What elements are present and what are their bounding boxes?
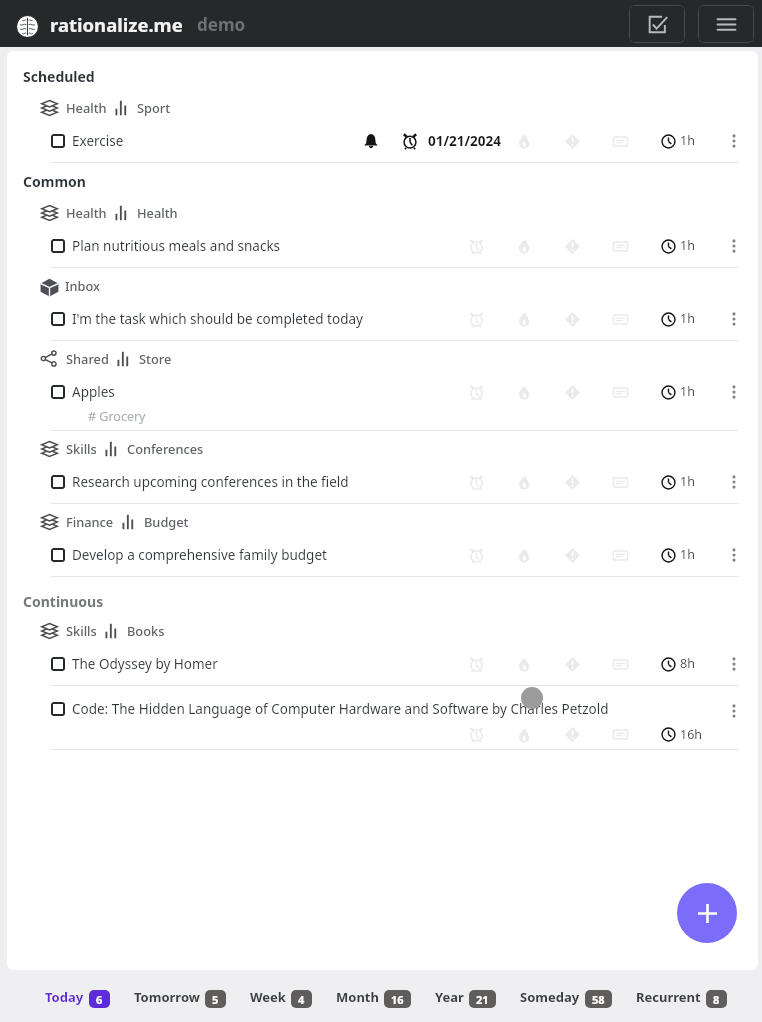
button[interactable]: Finance — [41, 504, 758, 538]
button[interactable]: Complete Research upcoming conferences i… — [7, 465, 758, 498]
staticText: Budget — [144, 513, 189, 530]
staticText: Conferences — [127, 440, 204, 457]
staticText: 5 — [212, 992, 219, 1007]
staticText: Health — [137, 204, 178, 221]
button[interactable]: Year — [435, 982, 496, 1012]
staticText: Health — [66, 99, 107, 116]
button[interactable]: Complete Code: The Hidden Language of Co… — [7, 686, 758, 744]
staticText: 1h — [680, 310, 695, 327]
button[interactable]: Complete Apples — [51, 385, 65, 399]
button[interactable]: More options — [725, 702, 743, 720]
button[interactable]: Toggle completed tasks — [629, 5, 685, 43]
staticText: Common — [23, 172, 86, 191]
staticText: 1h — [680, 132, 695, 149]
staticText: Today — [45, 988, 84, 1006]
staticText: Month — [336, 988, 379, 1006]
staticText: 01/21/2024 — [428, 132, 501, 150]
staticText: Finance — [66, 513, 114, 530]
button[interactable]: Complete I'm the task which should be co… — [51, 312, 65, 326]
button[interactable]: Inbox — [41, 268, 758, 302]
button[interactable]: More options — [725, 473, 743, 491]
staticText: Scheduled — [23, 67, 95, 86]
button[interactable]: Menu — [698, 5, 754, 43]
button[interactable]: Complete I'm the task which should be co… — [7, 302, 758, 335]
button[interactable]: More options — [725, 655, 743, 673]
button[interactable]: Someday — [520, 982, 612, 1012]
button[interactable]: More options — [725, 310, 743, 328]
button[interactable]: Skills — [41, 431, 758, 465]
staticText: Apples — [72, 383, 115, 401]
staticText: Research upcoming conferences in the fie… — [72, 473, 349, 491]
staticText: demo — [197, 13, 246, 36]
button[interactable]: Today — [45, 982, 110, 1012]
staticText: 1h — [680, 383, 695, 400]
button[interactable]: Shared — [41, 341, 758, 375]
staticText: Week — [250, 988, 286, 1006]
staticText: Year — [435, 988, 464, 1006]
button[interactable]: Complete Code: The Hidden Language of Co… — [51, 702, 65, 716]
staticText: 6 — [96, 992, 103, 1007]
button[interactable]: Complete Plan nutritious meals and snack… — [7, 229, 758, 262]
button[interactable]: Week — [250, 982, 312, 1012]
staticText: Exercise — [72, 132, 124, 150]
staticText: 1h — [680, 473, 695, 490]
staticText: 8 — [713, 992, 720, 1007]
staticText: Health — [66, 204, 107, 221]
staticText: I'm the task which should be completed t… — [72, 310, 363, 328]
staticText: Develop a comprehensive family budget — [72, 546, 327, 564]
staticText: Store — [139, 350, 172, 367]
button[interactable]: Tomorrow — [134, 982, 226, 1012]
staticText: 4 — [298, 992, 305, 1007]
button[interactable]: Month — [336, 982, 411, 1012]
staticText: 16 — [391, 992, 404, 1007]
staticText: Skills — [66, 622, 97, 639]
button[interactable]: Complete Research upcoming conferences i… — [51, 475, 65, 489]
staticText: 1h — [680, 237, 695, 254]
button[interactable]: More options — [725, 546, 743, 564]
staticText: 21 — [476, 992, 489, 1007]
staticText: 8h — [680, 655, 695, 672]
button[interactable]: More options — [725, 132, 743, 150]
staticText: Inbox — [65, 277, 100, 294]
staticText: Someday — [520, 988, 580, 1006]
staticText: Books — [127, 622, 165, 639]
staticText: rationalize.me — [50, 12, 183, 37]
staticText: Shared — [66, 350, 109, 367]
staticText: Recurrent — [636, 988, 701, 1006]
button[interactable]: Complete Exercise — [7, 124, 758, 157]
staticText: 16h — [680, 726, 703, 743]
staticText: Tomorrow — [134, 988, 200, 1006]
button[interactable]: Complete Develop a comprehensive family … — [7, 538, 758, 571]
staticText: Continuous — [23, 592, 104, 611]
button[interactable]: Complete The Odyssey by Homer — [7, 647, 758, 680]
button[interactable]: Complete Apples — [7, 375, 758, 425]
button[interactable]: Complete The Odyssey by Homer — [51, 657, 65, 671]
staticText: Plan nutritious meals and snacks — [72, 237, 281, 255]
button[interactable]: Health — [41, 90, 758, 124]
button[interactable]: Skills — [41, 613, 758, 647]
button[interactable]: More options — [725, 237, 743, 255]
button[interactable]: Add task — [677, 883, 737, 943]
button[interactable]: Complete Plan nutritious meals and snack… — [51, 239, 65, 253]
button[interactable]: Complete Develop a comprehensive family … — [51, 548, 65, 562]
staticText: 1h — [680, 546, 695, 563]
staticText: Code: The Hidden Language of Computer Ha… — [72, 700, 609, 718]
button[interactable]: Health — [41, 195, 758, 229]
staticText: Sport — [137, 99, 171, 116]
staticText: 58 — [592, 992, 605, 1007]
button[interactable]: Complete Exercise — [51, 134, 65, 148]
staticText: # Grocery — [88, 408, 146, 425]
staticText: The Odyssey by Homer — [72, 655, 218, 673]
button[interactable]: More options — [725, 383, 743, 401]
button[interactable]: Recurrent — [636, 982, 727, 1012]
staticText: Skills — [66, 440, 97, 457]
